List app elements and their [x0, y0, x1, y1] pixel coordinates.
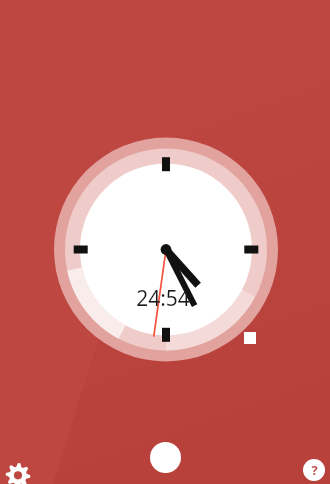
button[interactable]: Settings	[4, 458, 32, 484]
button[interactable]: Help	[303, 459, 325, 481]
staticText: ?	[311, 461, 318, 479]
staticText: 24:54	[136, 284, 190, 313]
button[interactable]: Record	[150, 442, 181, 473]
button[interactable]: Analog clock showing 24:54	[0, 0, 330, 484]
